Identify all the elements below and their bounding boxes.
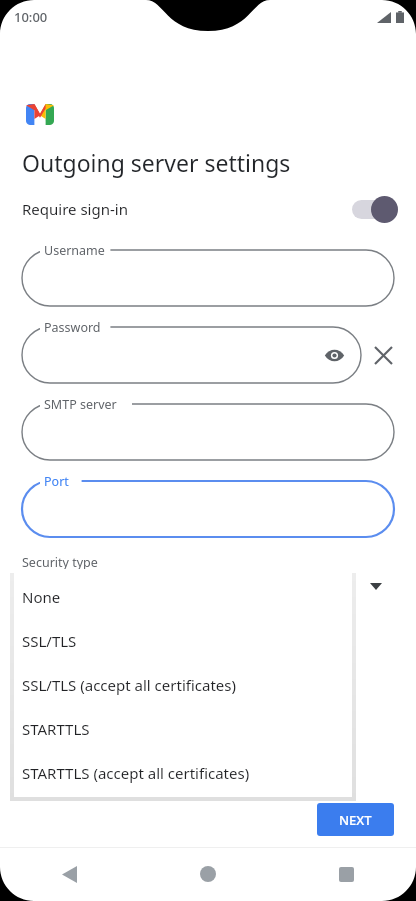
button[interactable]: NEXT (317, 803, 394, 836)
staticText: Security type (22, 554, 98, 571)
button[interactable]: SSL/TLS (accept all certificates) (14, 663, 352, 707)
staticText: STARTTLS (22, 719, 90, 739)
staticText: Require sign-in (22, 199, 128, 219)
button[interactable]: Require sign-in (0, 192, 416, 226)
button[interactable]: Password (22, 327, 361, 383)
button[interactable]: SSL/TLS (14, 619, 352, 663)
button[interactable]: Port (22, 481, 394, 537)
staticText: STARTTLS (accept all certificates) (22, 763, 250, 783)
button[interactable]: Recent apps (277, 847, 416, 901)
staticText: SSL/TLS (22, 631, 77, 651)
staticText: Outgoing server settings (22, 147, 291, 178)
button[interactable]: Require sign-in (348, 194, 400, 224)
button[interactable]: Username (22, 250, 394, 306)
button[interactable]: Home (138, 847, 277, 901)
button[interactable]: Open security type menu (362, 572, 390, 600)
button[interactable]: STARTTLS (14, 707, 352, 751)
staticText: 10:00 (14, 8, 48, 26)
staticText: Username (44, 242, 105, 259)
button[interactable]: Clear password (366, 338, 400, 372)
button[interactable]: None (14, 575, 352, 619)
button[interactable]: Back (0, 847, 138, 901)
staticText: Password (44, 319, 101, 336)
button[interactable]: SMTP server (22, 404, 394, 460)
staticText: SSL/TLS (accept all certificates) (22, 675, 236, 695)
button[interactable]: STARTTLS (accept all certificates) (14, 751, 352, 795)
staticText: None (22, 587, 61, 607)
button[interactable]: Show password (319, 340, 349, 370)
staticText: Port (44, 473, 69, 490)
staticText: NEXT (339, 811, 372, 829)
staticText: SMTP server (44, 396, 117, 413)
